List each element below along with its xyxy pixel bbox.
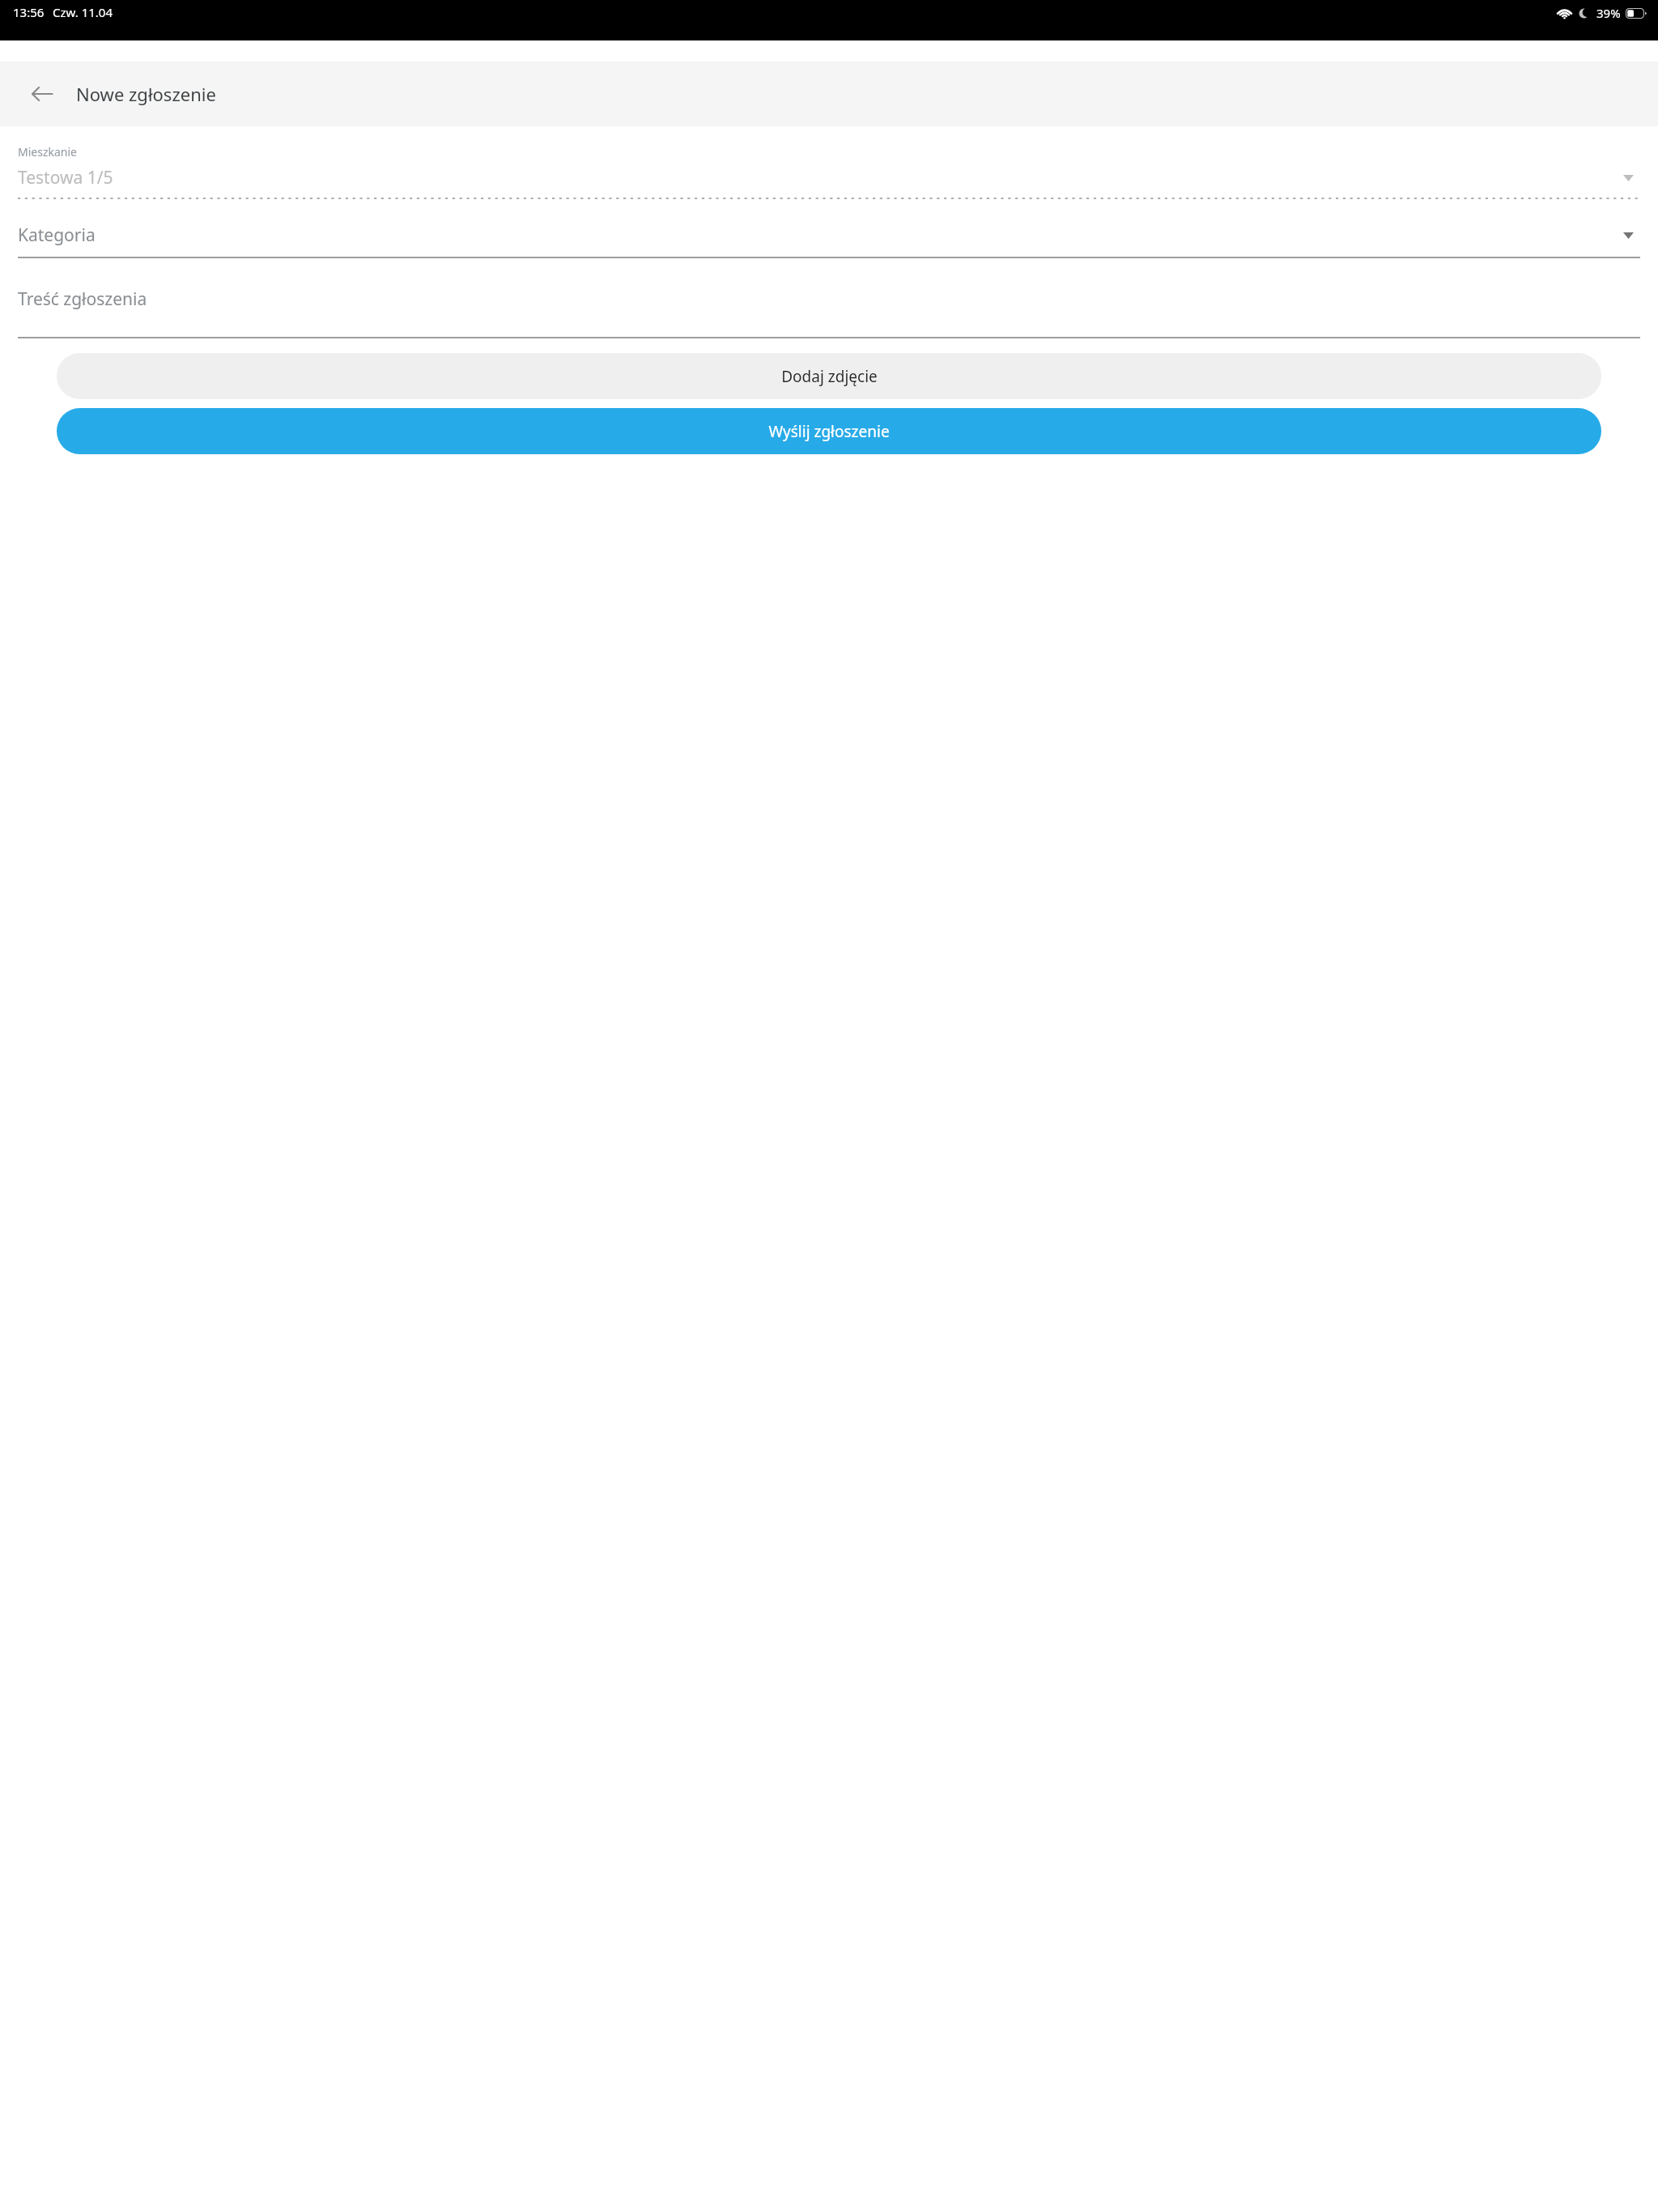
button[interactable]: Kategoria bbox=[0, 223, 1658, 258]
button[interactable]: Wyślij zgłoszenie bbox=[57, 408, 1601, 454]
button[interactable]: Mieszkanie bbox=[0, 144, 1658, 199]
button[interactable]: Treść zgłoszenia bbox=[0, 287, 1658, 338]
staticText: Nowe zgłoszenie bbox=[76, 82, 216, 106]
staticText: Mieszkanie bbox=[18, 144, 77, 160]
staticText: Dodaj zdjęcie bbox=[781, 366, 878, 387]
staticText: 39% bbox=[1596, 5, 1621, 21]
staticText: 13:56 bbox=[13, 4, 45, 20]
staticText: Testowa 1/5 bbox=[18, 166, 1623, 189]
staticText: Treść zgłoszenia bbox=[18, 287, 147, 311]
button[interactable]: Wstecz bbox=[23, 74, 62, 113]
staticText: Czw. 11.04 bbox=[53, 4, 113, 20]
button[interactable]: Dodaj zdjęcie bbox=[57, 353, 1601, 399]
staticText: Kategoria bbox=[18, 223, 1623, 247]
staticText: Wyślij zgłoszenie bbox=[768, 421, 890, 442]
